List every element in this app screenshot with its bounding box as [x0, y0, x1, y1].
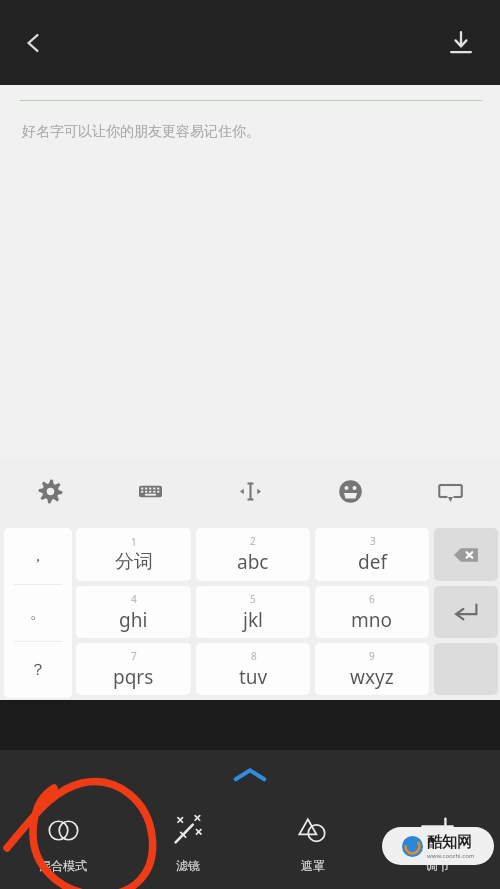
- button[interactable]: ，: [4, 528, 72, 584]
- button[interactable]: Download: [434, 16, 488, 70]
- button[interactable]: 调节: [375, 797, 500, 889]
- staticText: 8: [251, 649, 257, 663]
- staticText: 7: [131, 649, 137, 663]
- staticText: 9: [369, 649, 375, 663]
- staticText: mno: [351, 607, 393, 633]
- staticText: 2: [250, 534, 256, 548]
- staticText: 滤镜: [176, 858, 200, 873]
- staticText: 调节: [426, 858, 450, 873]
- staticText: 酷知网: [427, 833, 472, 852]
- button[interactable]: 8: [196, 643, 310, 695]
- staticText: ？: [30, 660, 46, 680]
- staticText: tuv: [239, 664, 268, 690]
- button[interactable]: 1: [76, 528, 191, 581]
- button[interactable]: Enter: [434, 586, 498, 638]
- staticText: www.coozhi.com: [427, 852, 475, 860]
- button[interactable]: Delete: [434, 528, 498, 581]
- staticText: 1: [131, 535, 137, 549]
- staticText: 3: [370, 534, 376, 548]
- staticText: 混合模式: [39, 858, 87, 873]
- button[interactable]: 2: [196, 528, 310, 581]
- button[interactable]: 5: [196, 586, 310, 638]
- staticText: def: [358, 549, 387, 575]
- staticText: jkl: [243, 607, 263, 633]
- button[interactable]: Expand: [227, 760, 273, 788]
- button[interactable]: Keyboard: [100, 458, 200, 524]
- staticText: 4: [131, 592, 137, 606]
- button[interactable]: 。: [4, 585, 72, 641]
- staticText: 6: [369, 592, 375, 606]
- button[interactable]: Emoji: [300, 458, 400, 524]
- staticText: ，: [30, 546, 46, 566]
- button[interactable]: 滤镜: [125, 797, 250, 889]
- button[interactable]: 混合模式: [0, 797, 125, 889]
- staticText: wxyz: [350, 664, 394, 690]
- button[interactable]: 7: [76, 643, 191, 695]
- button[interactable]: 9: [315, 643, 429, 695]
- button[interactable]: 4: [76, 586, 191, 638]
- staticText: 遮罩: [301, 858, 325, 873]
- staticText: abc: [237, 549, 269, 575]
- button[interactable]: Cursor: [200, 458, 300, 524]
- button[interactable]: 3: [315, 528, 429, 581]
- button[interactable]: Back: [6, 16, 60, 70]
- staticText: 分词: [115, 550, 153, 574]
- staticText: 好名字可以让你的朋友更容易记住你。: [22, 123, 260, 141]
- button[interactable]: ？: [4, 642, 72, 698]
- staticText: 。: [30, 603, 46, 623]
- button[interactable]: Settings: [0, 458, 100, 524]
- staticText: ghi: [119, 607, 148, 633]
- staticText: pqrs: [113, 664, 154, 690]
- button[interactable]: Layout: [400, 458, 500, 524]
- button[interactable]: 6: [315, 586, 429, 638]
- button[interactable]: 遮罩: [250, 797, 375, 889]
- staticText: 5: [250, 592, 256, 606]
